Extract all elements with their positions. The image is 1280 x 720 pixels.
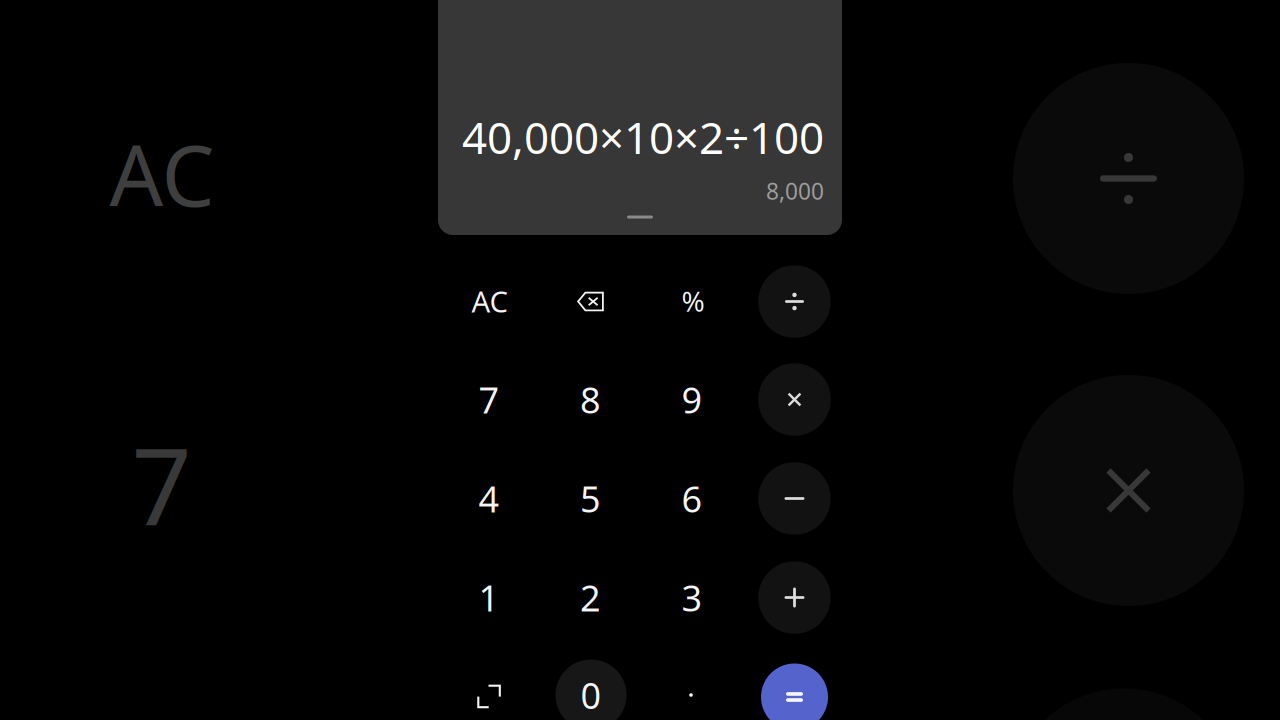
button[interactable]: Scientific calculator	[442, 649, 536, 720]
staticText: 0	[580, 671, 601, 719]
staticText: 8	[580, 376, 601, 423]
staticText: 2	[580, 574, 601, 621]
button[interactable]: 9	[645, 352, 739, 446]
button[interactable]: 7	[442, 352, 536, 446]
button[interactable]: Decimal point	[644, 648, 738, 720]
button[interactable]: Multiply	[747, 352, 841, 446]
button[interactable]: 1	[442, 550, 536, 644]
button[interactable]: 6	[645, 451, 739, 545]
staticText: AC	[109, 118, 214, 230]
button[interactable]: Add	[747, 550, 841, 644]
staticText: 7	[131, 414, 191, 554]
button[interactable]: 5	[543, 451, 637, 545]
staticText: %	[681, 282, 704, 320]
button[interactable]: Subtract	[747, 451, 841, 545]
button[interactable]: 8	[543, 352, 637, 446]
button[interactable]: AC	[443, 254, 537, 348]
button[interactable]: 2	[543, 550, 637, 644]
staticText: 1	[478, 574, 499, 621]
staticText: 40,000×10×2÷100	[462, 108, 824, 166]
button[interactable]: 3	[645, 550, 739, 644]
staticText: 5	[580, 475, 601, 522]
staticText: 4	[478, 475, 499, 522]
button[interactable]: 4	[442, 451, 536, 545]
button[interactable]: 0	[544, 648, 638, 720]
staticText: 8,000	[766, 176, 824, 206]
staticText: 9	[681, 376, 702, 423]
staticText: 3	[681, 574, 702, 621]
button[interactable]: Divide	[747, 254, 841, 348]
button[interactable]: %	[646, 254, 740, 348]
staticText: 6	[681, 475, 702, 522]
staticText: 7	[478, 376, 499, 423]
button[interactable]: Equals	[747, 650, 841, 720]
button[interactable]: Delete	[543, 254, 637, 348]
staticText: AC	[471, 281, 508, 320]
